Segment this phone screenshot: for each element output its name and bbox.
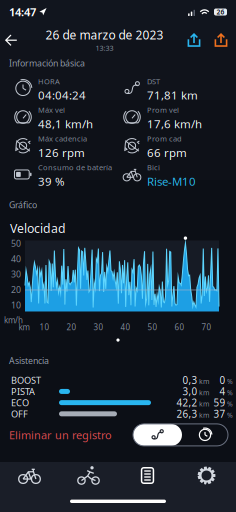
staticText: 48,1 km/h — [38, 116, 93, 132]
staticText: % — [227, 410, 233, 420]
staticText: Información básica — [9, 57, 85, 69]
staticText: Rise-M10 — [147, 173, 196, 189]
staticText: Velocidad — [10, 220, 66, 236]
staticText: km — [199, 388, 209, 397]
staticText: 0 — [219, 373, 225, 387]
staticText: 10 — [11, 299, 21, 311]
button[interactable]: Records — [118, 464, 177, 486]
button[interactable]: Settings — [177, 464, 236, 486]
staticText: Gráfico — [9, 199, 37, 211]
staticText: 30 — [93, 322, 103, 332]
staticText: Prom cad — [147, 134, 182, 144]
button[interactable]: Eliminar un registro — [7, 422, 114, 447]
button[interactable]: Time view — [182, 424, 228, 446]
staticText: Eliminar un registro — [9, 427, 112, 442]
staticText: 37 — [213, 407, 225, 420]
button[interactable]: Back — [0, 24, 23, 50]
staticText: 30 — [11, 268, 21, 280]
staticText: Bici — [147, 162, 160, 172]
staticText: 40 — [120, 322, 130, 332]
staticText: 0,3 — [182, 373, 197, 387]
staticText: 20 — [11, 284, 21, 296]
staticText: DST — [147, 76, 160, 86]
staticText: Asistencia — [9, 355, 49, 367]
staticText: 66 rpm — [147, 145, 187, 160]
staticText: 20 — [66, 322, 76, 332]
staticText: 13:33 — [95, 43, 113, 53]
staticText: 60 — [174, 322, 184, 332]
staticText: % — [227, 388, 233, 397]
staticText: 50 — [147, 322, 157, 332]
staticText: 17,6 km/h — [147, 116, 202, 132]
staticText: Prom vel — [147, 105, 179, 115]
staticText: BOOST — [11, 374, 41, 386]
button[interactable]: Export ride — [211, 30, 231, 50]
button[interactable]: Share ride — [184, 30, 204, 50]
staticText: 59 — [213, 396, 225, 409]
staticText: HORA — [38, 76, 60, 86]
staticText: 40 — [11, 253, 21, 265]
staticText: 10 — [39, 322, 49, 332]
staticText: 26,3 — [176, 407, 197, 420]
staticText: 50 — [11, 237, 21, 249]
staticText: km — [18, 322, 29, 332]
staticText: 3,0 — [182, 385, 197, 398]
staticText: Máx cadencia — [38, 134, 87, 144]
button[interactable]: Bikes — [0, 464, 59, 486]
staticText: ECO — [11, 396, 29, 409]
staticText: km — [199, 410, 209, 420]
staticText: Consumo de batería — [38, 162, 112, 172]
staticText: % — [227, 399, 233, 408]
staticText: km — [199, 399, 209, 408]
staticText: 14:47 — [9, 4, 36, 20]
staticText: 70 — [201, 322, 211, 332]
staticText: PISTA — [11, 385, 35, 398]
staticText: % — [227, 377, 233, 386]
staticText: 126 rpm — [38, 145, 85, 160]
staticText: km/h — [4, 315, 23, 326]
staticText: 42,2 — [176, 396, 197, 409]
staticText: Máx vel — [38, 105, 65, 115]
staticText: 26 de marzo de 2023 — [45, 27, 163, 43]
staticText: OFF — [11, 408, 28, 420]
staticText: 4 — [219, 385, 225, 398]
button[interactable]: Map view — [133, 424, 182, 446]
staticText: 39 % — [38, 173, 65, 189]
staticText: 26 — [216, 7, 224, 17]
staticText: 71,81 km — [147, 87, 198, 103]
button[interactable]: Rides — [59, 464, 118, 486]
staticText: 04:04:24 — [38, 87, 86, 103]
staticText: km — [199, 377, 209, 386]
